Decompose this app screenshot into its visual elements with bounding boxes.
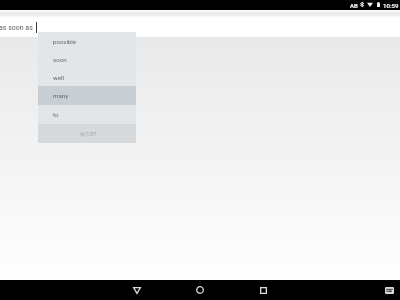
button[interactable]: soon	[38, 50, 136, 68]
button[interactable]: Switch keyboard	[383, 280, 396, 300]
button[interactable]: to	[38, 105, 136, 124]
button[interactable]: as soon as	[0, 18, 400, 37]
button[interactable]: Recent apps	[243, 280, 283, 300]
button[interactable]: many	[38, 86, 136, 105]
staticText: to	[53, 111, 59, 118]
button[interactable]: Back	[117, 280, 157, 300]
staticText: 4/137	[80, 130, 97, 137]
staticText: 10:59	[383, 2, 399, 9]
button[interactable]: possible	[38, 32, 136, 50]
staticText: soon	[53, 56, 67, 63]
button[interactable]: well	[38, 68, 136, 86]
staticText: possible	[53, 38, 77, 45]
button[interactable]: Home	[180, 280, 220, 300]
staticText: many	[53, 92, 69, 99]
staticText: well	[53, 74, 64, 81]
button[interactable]: 4/137	[38, 124, 136, 143]
staticText: AB	[350, 2, 358, 9]
staticText: as soon as	[0, 24, 33, 32]
